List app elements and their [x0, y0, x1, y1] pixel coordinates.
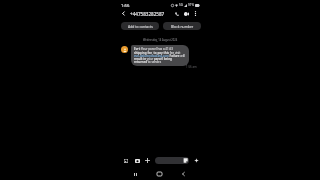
- button[interactable]: Assist: [193, 157, 200, 164]
- button[interactable]: Add attachment: [144, 157, 151, 164]
- button[interactable]: Add to contacts: [121, 22, 159, 30]
- staticText: Add to contacts: [128, 24, 153, 29]
- button[interactable]: Camera: [134, 157, 141, 164]
- button[interactable]: Home: [155, 170, 163, 178]
- button[interactable]: Call: [172, 9, 181, 18]
- staticText: Evri: Your parcel has a £1.63 shipping f…: [134, 47, 185, 64]
- button[interactable]: Recent apps: [131, 170, 139, 178]
- button[interactable]: Stickers: [183, 158, 188, 163]
- button[interactable]: Block number: [163, 22, 201, 30]
- button[interactable]: Back: [119, 9, 128, 18]
- staticText: Block number: [171, 24, 194, 29]
- staticText: 91%: [188, 3, 194, 7]
- button[interactable]: Evri: Your parcel has a £1.63 shipping f…: [131, 45, 189, 66]
- staticText: 5G: [179, 3, 183, 7]
- staticText: Wednesday, 14 August 2024: [143, 38, 178, 42]
- button[interactable]: Stickers: [155, 157, 189, 164]
- staticText: +447583282587: [130, 11, 165, 17]
- staticText: 1:56: [121, 3, 130, 9]
- button[interactable]: Back: [179, 170, 187, 178]
- staticText: 1:56 am: [186, 65, 197, 69]
- button[interactable]: Gallery: [122, 157, 129, 164]
- button[interactable]: More options: [191, 9, 200, 18]
- button[interactable]: Video call: [182, 9, 191, 18]
